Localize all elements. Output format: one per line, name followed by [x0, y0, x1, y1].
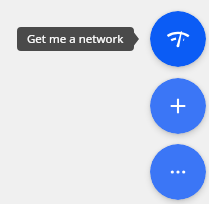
button[interactable]: Get me a network [17, 27, 139, 51]
button[interactable]: Add [150, 78, 206, 134]
staticText: Get me a network [27, 31, 124, 47]
button[interactable]: More options [150, 144, 206, 200]
button[interactable]: Get me a network [150, 11, 206, 67]
